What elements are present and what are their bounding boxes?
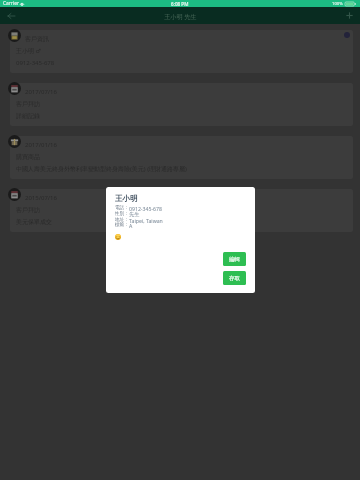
staticText: 性別： <box>115 211 129 217</box>
staticText: 王小明 ♂ <box>16 47 41 55</box>
button[interactable]: 存取 <box>223 271 246 285</box>
staticText: Taipei, Taiwan <box>129 217 163 224</box>
staticText: 地址： <box>115 217 129 223</box>
staticText: 存取 <box>229 275 240 282</box>
staticText: 100% <box>332 1 343 7</box>
button[interactable]: 2015/07/16 <box>10 189 353 232</box>
staticText: 美元保單成交 <box>16 218 52 226</box>
staticText: 0912-345-678 <box>16 59 55 67</box>
staticText: 客戶拜訪 <box>16 206 40 214</box>
staticText: Carrier <box>3 0 19 7</box>
staticText: 2017/07/16 <box>25 88 57 96</box>
button[interactable]: Add <box>338 7 360 24</box>
button[interactable]: 2017/07/16 <box>10 83 353 126</box>
button[interactable]: 編輯 <box>223 252 246 266</box>
staticText: 王小明 <box>115 194 138 203</box>
staticText: 0912-345-678 <box>129 205 163 212</box>
staticText: A <box>129 222 133 229</box>
staticText: 中國人壽美元終身外幣利率變動型終身壽險(美元) (理財通路專屬) <box>16 165 187 173</box>
staticText: 2015/07/16 <box>25 194 57 202</box>
staticText: 電話： <box>115 205 129 211</box>
staticText: 詳細記錄 <box>16 112 40 120</box>
button[interactable]: 客戶資訊 <box>10 30 353 73</box>
staticText: 購買商品 <box>16 153 40 161</box>
button[interactable]: 2017/01/16 <box>10 136 353 179</box>
staticText: 標籤： <box>115 222 129 228</box>
staticText: 6:08 PM <box>171 1 189 7</box>
staticText: 王小明 先生 <box>164 12 197 20</box>
button[interactable]: Back <box>0 7 22 24</box>
staticText: 編輯 <box>229 256 240 263</box>
staticText: 客戶資訊 <box>25 35 49 43</box>
staticText: 客戶拜訪 <box>16 100 40 108</box>
staticText: 先生 <box>129 211 140 218</box>
staticText: 2017/01/16 <box>25 141 57 149</box>
